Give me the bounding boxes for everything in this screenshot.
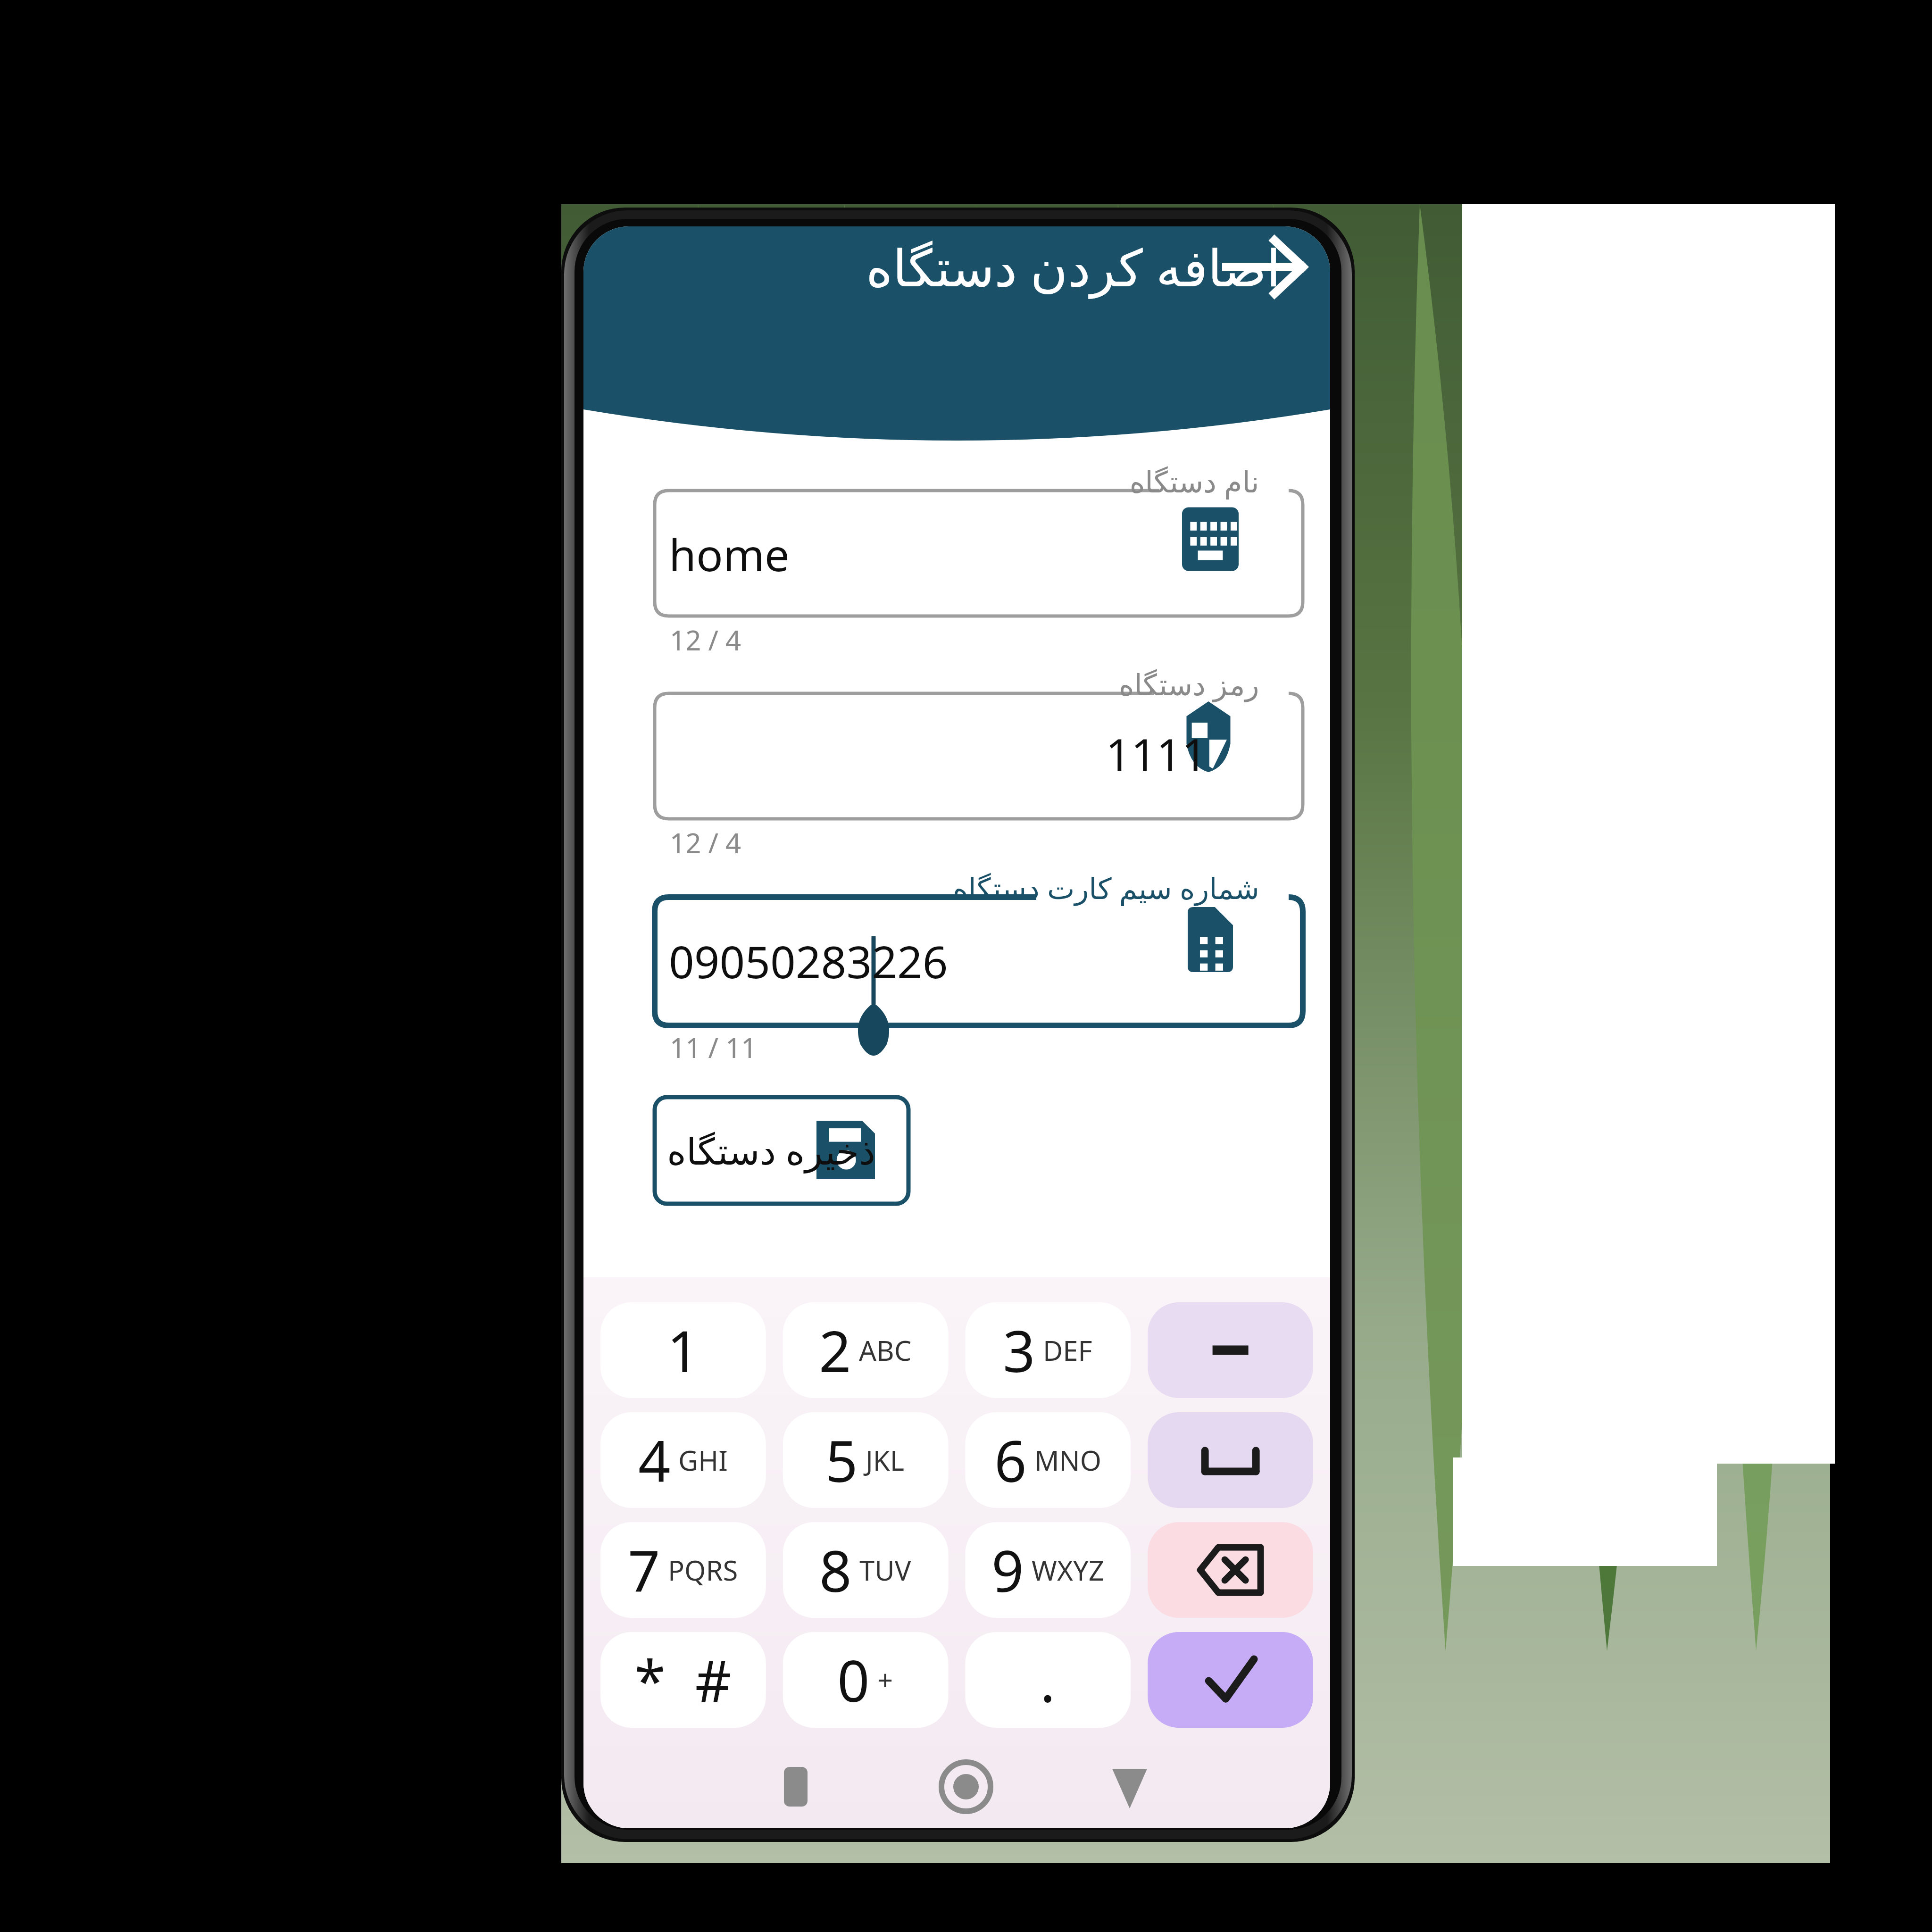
staticText: PQRS [668,1551,738,1589]
button[interactable]: 4 [600,1412,766,1508]
staticText: 1 [667,1312,700,1389]
staticText: 3 [1003,1312,1035,1389]
staticText: 2 [819,1312,851,1389]
staticText: 9 [991,1532,1024,1608]
staticText: 09050283226 [669,931,948,991]
button[interactable]: ذخیره دستگاه [655,1097,908,1204]
button[interactable]: Back [1224,229,1314,305]
button[interactable]: Home [930,1762,1001,1819]
button[interactable]: 2 [783,1302,948,1398]
staticText: 5 [825,1422,858,1499]
button[interactable]: اضافه کردن دستگاه [887,231,1259,302]
button[interactable]: 8 [783,1522,948,1618]
staticText: 4 [638,1422,671,1499]
staticText: GHI [678,1441,728,1479]
button[interactable]: 7 [600,1522,766,1618]
button[interactable]: Backspace key [1148,1522,1313,1618]
staticText: * # [634,1641,732,1718]
button[interactable]: 3 [965,1302,1130,1398]
staticText: 7 [628,1532,660,1608]
button[interactable]: Recent apps [763,1762,834,1819]
staticText: MNO [1034,1441,1101,1479]
staticText: DEF [1043,1332,1092,1369]
staticText: 12 / 4 [670,621,741,658]
button[interactable]: . [965,1632,1130,1728]
staticText: ABC [859,1332,912,1369]
staticText: اضافه کردن دستگاه [866,232,1281,301]
button[interactable]: 0 [783,1632,948,1728]
button[interactable]: Space key [1148,1412,1313,1508]
staticText: + [877,1661,893,1699]
button[interactable]: home [669,525,1027,583]
button[interactable]: 9 [965,1522,1130,1618]
button[interactable]: Dash key [1148,1302,1313,1398]
staticText: شماره سیم کارت دستگاه [953,868,1259,908]
staticText: 8 [819,1532,852,1608]
staticText: 0 [837,1641,870,1718]
button[interactable]: 5 [783,1412,948,1508]
button[interactable]: 1111 [1024,724,1207,783]
staticText: TUV [859,1551,911,1589]
staticText: رمز دستگاه [1119,664,1259,704]
staticText: 6 [994,1422,1027,1499]
staticText: 1111 [1106,724,1207,784]
button[interactable]: Enter key [1148,1632,1313,1728]
staticText: JKL [866,1441,905,1479]
button[interactable]: 1 [600,1302,766,1398]
button[interactable]: Back [1093,1762,1164,1819]
staticText: نام دستگاه [1130,461,1259,501]
staticText: 11 / 11 [670,1029,757,1066]
button[interactable]: 09050283226 [669,932,1027,991]
button[interactable]: * # [600,1632,766,1728]
staticText: WXYZ [1032,1551,1104,1589]
staticText: home [669,524,790,584]
staticText: . [1040,1641,1056,1718]
staticText: ذخیره دستگاه [667,1125,876,1175]
staticText: 12 / 4 [670,824,741,861]
button[interactable]: 6 [965,1412,1130,1508]
